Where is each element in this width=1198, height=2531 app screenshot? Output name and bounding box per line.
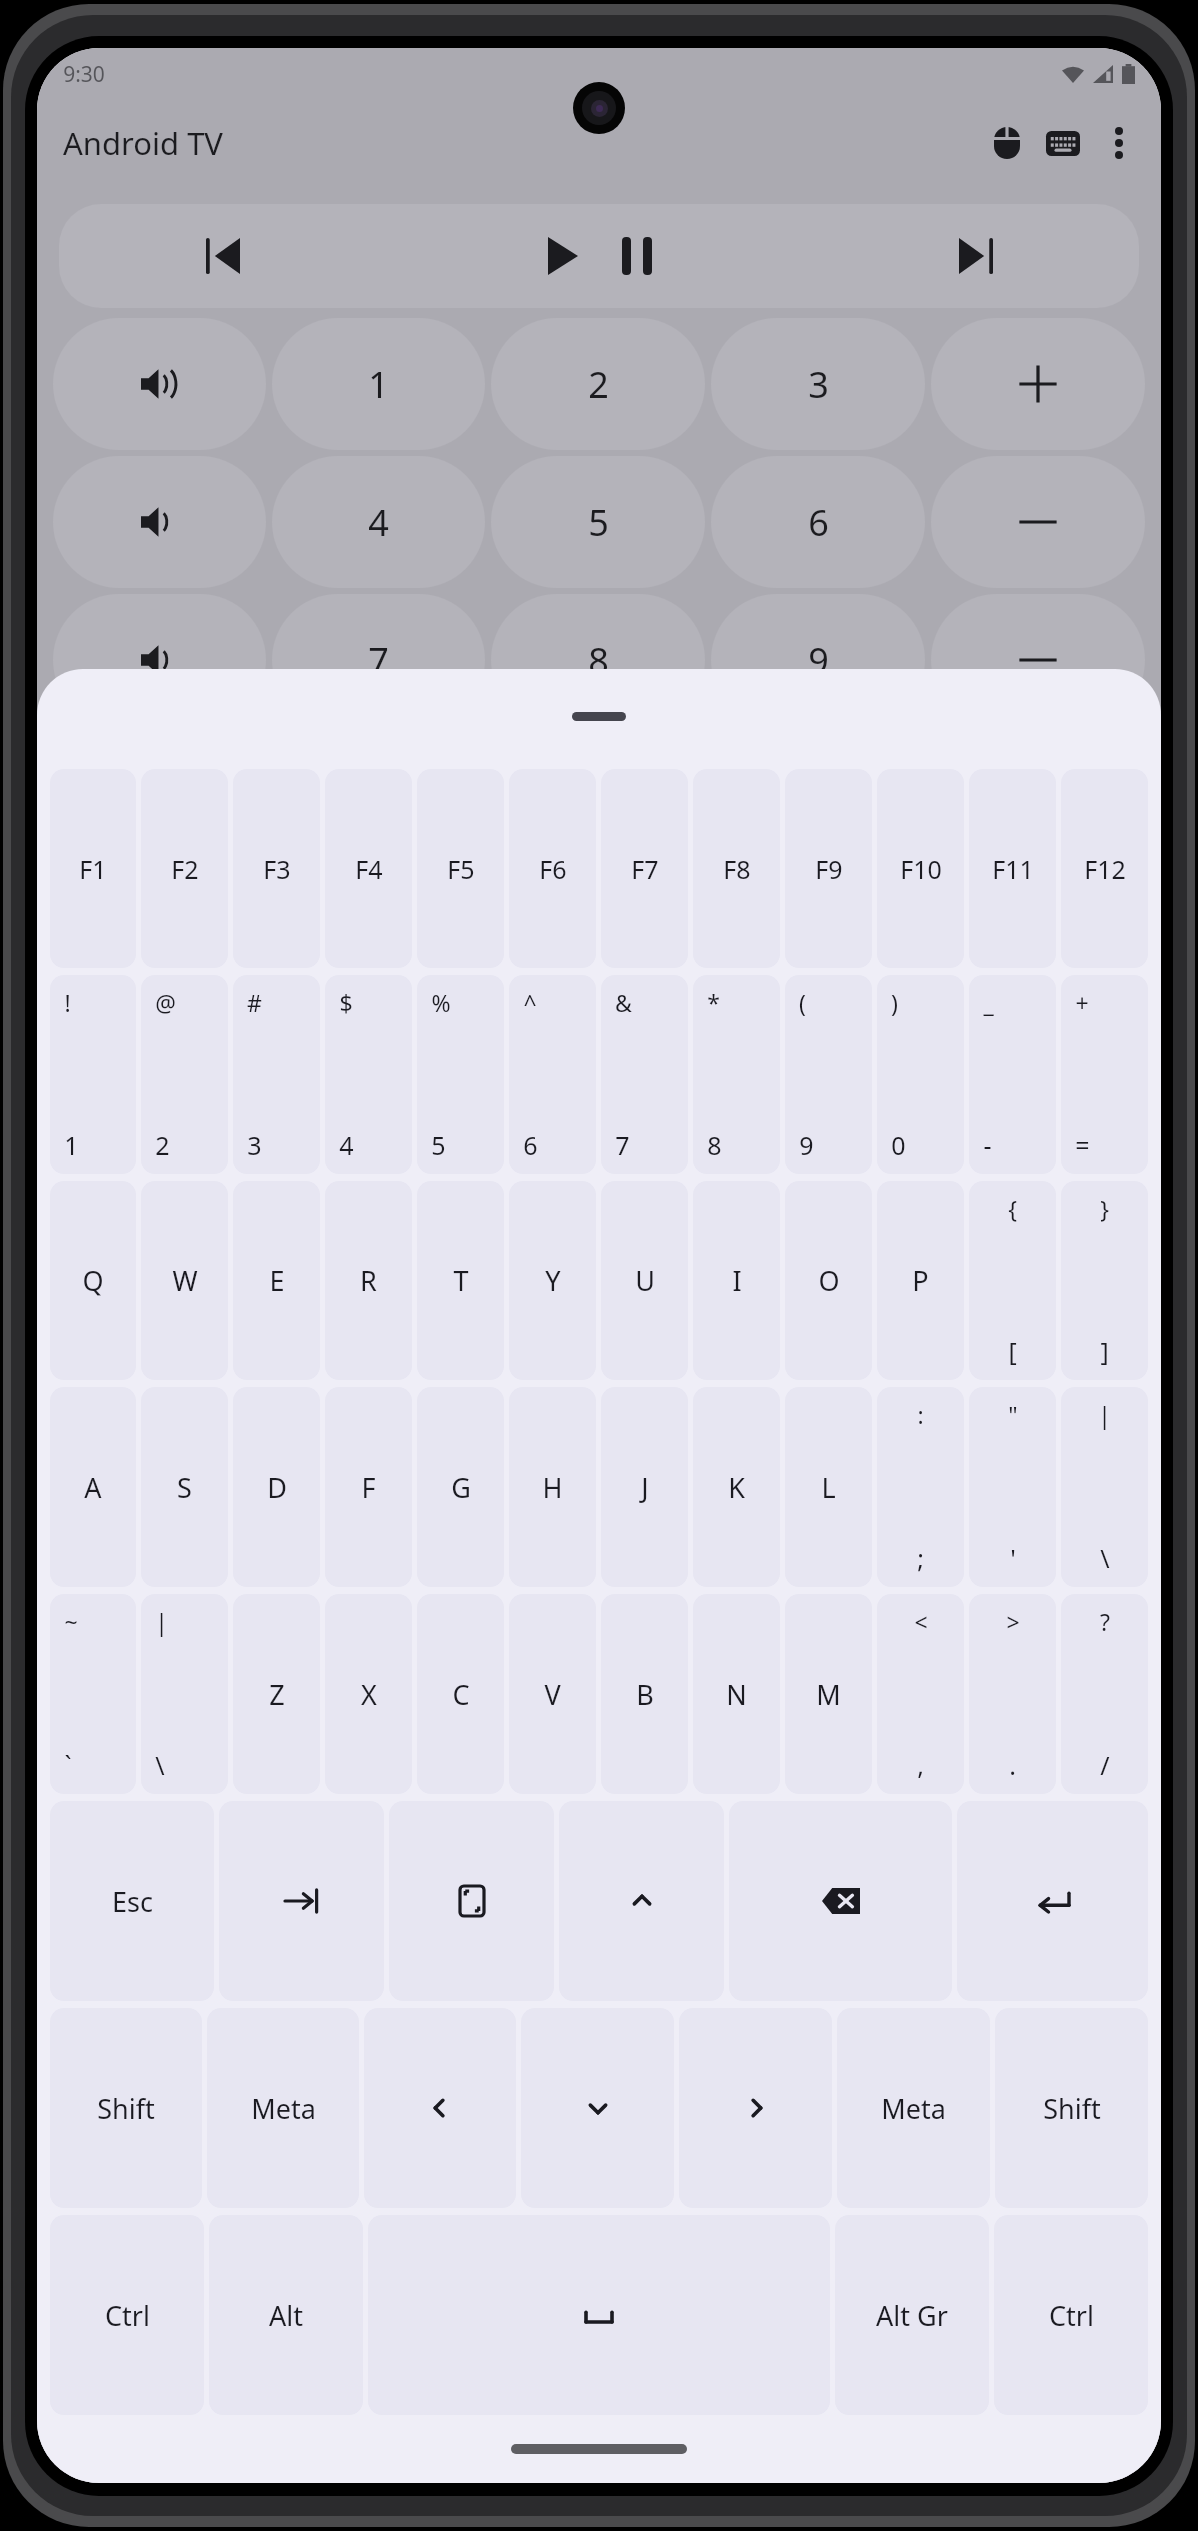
- button[interactable]: 7: [601, 975, 688, 1174]
- button[interactable]: U: [601, 1181, 688, 1380]
- button[interactable]: Backspace: [729, 1801, 952, 2001]
- button[interactable]: Caps lock: [389, 1801, 554, 2001]
- button[interactable]: Shift: [995, 2008, 1148, 2208]
- button[interactable]: 1: [272, 318, 485, 450]
- button[interactable]: 2: [491, 318, 705, 450]
- button[interactable]: N: [693, 1594, 780, 1794]
- button[interactable]: +: [931, 318, 1145, 450]
- button[interactable]: 3: [711, 318, 925, 450]
- button[interactable]: Alt: [209, 2215, 363, 2415]
- button[interactable]: vol_up: [53, 318, 266, 450]
- button[interactable]: Right: [679, 2008, 832, 2208]
- button[interactable]: T: [417, 1181, 504, 1380]
- button[interactable]: Y: [509, 1181, 596, 1380]
- button[interactable]: Enter: [957, 1801, 1148, 2001]
- button[interactable]: I: [693, 1181, 780, 1380]
- button[interactable]: \: [141, 1594, 228, 1794]
- button[interactable]: F2: [141, 769, 228, 968]
- button[interactable]: More options: [1091, 115, 1147, 171]
- button[interactable]: S: [141, 1387, 228, 1587]
- button[interactable]: 1: [50, 975, 136, 1174]
- button[interactable]: Play: [526, 219, 600, 293]
- button[interactable]: F9: [785, 769, 872, 968]
- button[interactable]: 7: [272, 594, 485, 726]
- button[interactable]: Previous: [59, 204, 387, 308]
- button[interactable]: ;: [877, 1387, 964, 1587]
- button[interactable]: Down: [521, 2008, 674, 2208]
- button[interactable]: -: [931, 456, 1145, 588]
- button[interactable]: .: [969, 1594, 1056, 1794]
- button[interactable]: Z: [233, 1594, 320, 1794]
- button[interactable]: Tab: [219, 1801, 384, 2001]
- button[interactable]: F6: [509, 769, 596, 968]
- button[interactable]: 4: [272, 456, 485, 588]
- button[interactable]: Ctrl: [50, 2215, 204, 2415]
- button[interactable]: 5: [417, 975, 504, 1174]
- button[interactable]: C: [417, 1594, 504, 1794]
- button[interactable]: 0: [877, 975, 964, 1174]
- button[interactable]: M: [785, 1594, 872, 1794]
- button[interactable]: P: [877, 1181, 964, 1380]
- button[interactable]: 8: [693, 975, 780, 1174]
- button[interactable]: 3: [233, 975, 320, 1174]
- button[interactable]: 6: [509, 975, 596, 1174]
- button[interactable]: F3: [233, 769, 320, 968]
- button[interactable]: A: [50, 1387, 136, 1587]
- button[interactable]: X: [325, 1594, 412, 1794]
- button[interactable]: Meta: [207, 2008, 359, 2208]
- button[interactable]: 6: [711, 456, 925, 588]
- button[interactable]: D: [233, 1387, 320, 1587]
- button[interactable]: Space: [368, 2215, 830, 2415]
- button[interactable]: F1: [50, 769, 136, 968]
- button[interactable]: F12: [1061, 769, 1148, 968]
- button[interactable]: F: [325, 1387, 412, 1587]
- button[interactable]: vol_dn: [53, 456, 266, 588]
- button[interactable]: Ctrl: [994, 2215, 1148, 2415]
- button[interactable]: Touchpad: [979, 115, 1035, 171]
- button[interactable]: Keyboard: [1035, 115, 1091, 171]
- button[interactable]: Next: [812, 204, 1139, 308]
- button[interactable]: Left: [364, 2008, 516, 2208]
- button[interactable]: 2: [141, 975, 228, 1174]
- button[interactable]: F7: [601, 769, 688, 968]
- button[interactable]: B: [601, 1594, 688, 1794]
- button[interactable]: Esc: [50, 1801, 214, 2001]
- button[interactable]: =: [1061, 975, 1148, 1174]
- button[interactable]: R: [325, 1181, 412, 1380]
- button[interactable]: 5: [491, 456, 705, 588]
- button[interactable]: `: [50, 1594, 136, 1794]
- button[interactable]: 9: [711, 594, 925, 726]
- button[interactable]: F8: [693, 769, 780, 968]
- button[interactable]: x: [931, 594, 1145, 726]
- button[interactable]: 4: [325, 975, 412, 1174]
- button[interactable]: F10: [877, 769, 964, 968]
- button[interactable]: /: [1061, 1594, 1148, 1794]
- button[interactable]: Meta: [837, 2008, 990, 2208]
- button[interactable]: H: [509, 1387, 596, 1587]
- button[interactable]: 8: [491, 594, 705, 726]
- button[interactable]: J: [601, 1387, 688, 1587]
- button[interactable]: Alt Gr: [835, 2215, 989, 2415]
- button[interactable]: G: [417, 1387, 504, 1587]
- button[interactable]: ]: [1061, 1181, 1148, 1380]
- button[interactable]: [: [969, 1181, 1056, 1380]
- button[interactable]: mute: [53, 594, 266, 726]
- button[interactable]: Pause: [600, 219, 674, 293]
- button[interactable]: F5: [417, 769, 504, 968]
- button[interactable]: \: [1061, 1387, 1148, 1587]
- button[interactable]: Shift: [50, 2008, 202, 2208]
- button[interactable]: F4: [325, 769, 412, 968]
- button[interactable]: O: [785, 1181, 872, 1380]
- button[interactable]: E: [233, 1181, 320, 1380]
- button[interactable]: K: [693, 1387, 780, 1587]
- button[interactable]: F11: [969, 769, 1056, 968]
- button[interactable]: W: [141, 1181, 228, 1380]
- button[interactable]: -: [969, 975, 1056, 1174]
- button[interactable]: ,: [877, 1594, 964, 1794]
- button[interactable]: L: [785, 1387, 872, 1587]
- button[interactable]: Q: [50, 1181, 136, 1380]
- button[interactable]: Up: [559, 1801, 724, 2001]
- button[interactable]: ': [969, 1387, 1056, 1587]
- button[interactable]: V: [509, 1594, 596, 1794]
- button[interactable]: 9: [785, 975, 872, 1174]
